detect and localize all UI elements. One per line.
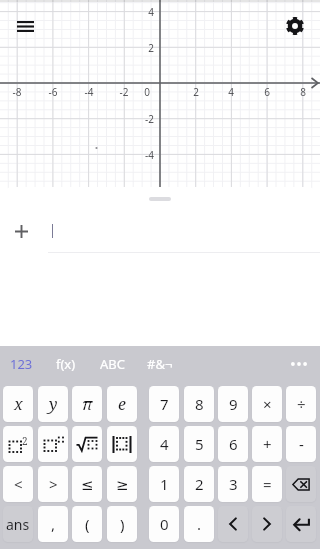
staticText: + <box>263 434 272 454</box>
staticText: . <box>197 514 202 534</box>
button[interactable]: 8 <box>184 386 214 422</box>
staticText: 5 <box>195 434 204 454</box>
staticText: ÷ <box>297 394 306 414</box>
button[interactable]: > <box>38 466 68 502</box>
staticText: 9 <box>229 394 238 414</box>
button[interactable]: 123 <box>3 351 26 376</box>
staticText: -2 <box>112 85 136 99</box>
button[interactable]: + <box>252 426 282 462</box>
button[interactable]: e <box>107 386 137 422</box>
staticText: π <box>82 393 93 415</box>
button[interactable]: 4 <box>149 426 179 462</box>
staticText: 2 <box>124 41 154 55</box>
staticText: e <box>118 393 126 415</box>
button[interactable]: 6 <box>218 426 248 462</box>
button[interactable]: 9 <box>218 386 248 422</box>
button[interactable]: y <box>38 386 68 422</box>
staticText: -6 <box>41 85 65 99</box>
staticText: 123 <box>10 355 33 373</box>
button[interactable]: Backspace <box>286 466 316 502</box>
staticText: 6 <box>255 85 279 99</box>
staticText: -2 <box>124 112 154 126</box>
button[interactable]: Move left <box>218 506 248 542</box>
button[interactable]: Menu <box>8 9 42 43</box>
staticText: 3 <box>229 474 238 494</box>
button[interactable]: , <box>38 506 68 542</box>
button[interactable]: ans <box>3 506 33 542</box>
staticText: × <box>263 394 272 414</box>
staticText: 8 <box>291 85 315 99</box>
button[interactable]: ÷ <box>286 386 316 422</box>
staticText: , <box>51 514 56 534</box>
staticText: > <box>49 474 58 494</box>
button[interactable]: f(x) <box>49 351 69 376</box>
button[interactable]: ≤ <box>72 466 102 502</box>
staticText: 6 <box>229 434 238 454</box>
button[interactable]: 0 <box>149 506 179 542</box>
staticText: ≤ <box>81 476 94 493</box>
staticText: 2 <box>22 434 28 448</box>
staticText: -8 <box>5 85 29 99</box>
staticText: ( <box>85 514 90 534</box>
button[interactable]: Absolute value <box>107 426 137 462</box>
button[interactable]: Add expression <box>8 218 34 244</box>
button[interactable]: × <box>252 386 282 422</box>
button[interactable]: x <box>3 386 33 422</box>
button[interactable]: ABC <box>93 351 118 376</box>
staticText: 7 <box>160 394 169 414</box>
button[interactable]: ≥ <box>107 466 137 502</box>
staticText: -6 <box>124 184 154 198</box>
button[interactable]: ( <box>72 506 102 542</box>
staticText: y <box>49 393 58 415</box>
staticText: 4 <box>219 85 243 99</box>
button[interactable]: π <box>72 386 102 422</box>
staticText: 8 <box>195 394 204 414</box>
button[interactable]: ) <box>107 506 137 542</box>
staticText: 2 <box>195 474 204 494</box>
staticText: ) <box>120 514 125 534</box>
button[interactable]: . <box>184 506 214 542</box>
staticText: x <box>14 393 23 415</box>
staticText: 1 <box>160 474 169 494</box>
button[interactable]: More options <box>286 351 312 376</box>
button[interactable]: 3 <box>218 466 248 502</box>
button[interactable]: 7 <box>149 386 179 422</box>
staticText: = <box>263 474 272 494</box>
staticText: ≥ <box>116 476 129 493</box>
staticText: 0 <box>135 85 159 99</box>
button[interactable]: Power <box>38 426 68 462</box>
staticText: < <box>14 474 23 494</box>
staticText: 2 <box>184 85 208 99</box>
button[interactable]: Square <box>3 426 33 462</box>
button[interactable]: Square root <box>72 426 102 462</box>
button[interactable]: - <box>286 426 316 462</box>
staticText: ABC <box>100 355 125 373</box>
staticText: f(x) <box>56 355 76 373</box>
staticText: 4 <box>160 434 169 454</box>
staticText: ans <box>6 515 30 534</box>
button[interactable]: = <box>252 466 282 502</box>
button[interactable]: #&¬ <box>140 351 166 376</box>
staticText: -4 <box>124 148 154 162</box>
staticText: - <box>299 434 304 454</box>
button[interactable]: Move right <box>252 506 282 542</box>
staticText: 0 <box>160 514 169 534</box>
staticText: -4 <box>77 85 101 99</box>
staticText: 4 <box>124 5 154 19</box>
button[interactable]: 2 <box>184 466 214 502</box>
button[interactable]: Settings <box>278 9 312 43</box>
button[interactable]: Enter <box>286 506 316 542</box>
button[interactable]: 1 <box>149 466 179 502</box>
button[interactable]: < <box>3 466 33 502</box>
staticText: #&¬ <box>147 355 173 373</box>
button[interactable]: 5 <box>184 426 214 462</box>
